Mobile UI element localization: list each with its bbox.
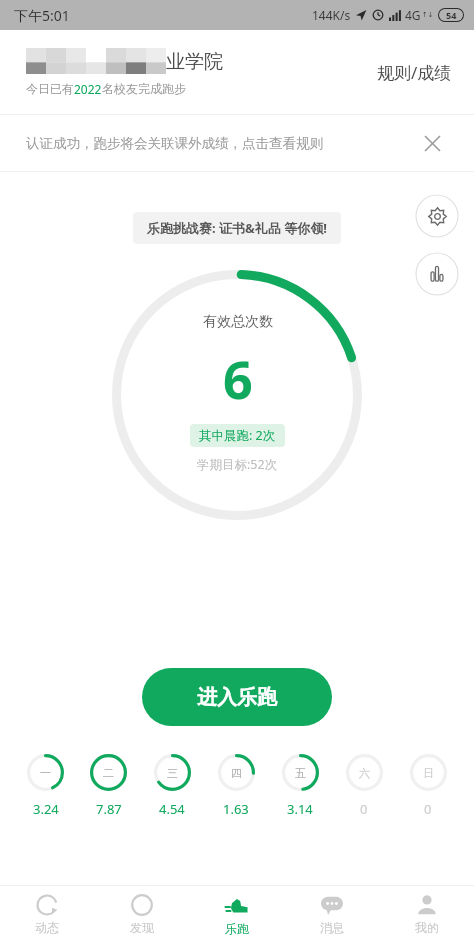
button[interactable]: 进入乐跑 xyxy=(142,668,332,726)
staticText: 其中晨跑: 2次 xyxy=(199,427,276,444)
button[interactable]: 乐跑挑战赛: 证书&礼品 等你领! xyxy=(133,212,341,244)
button[interactable]: 三 xyxy=(140,748,204,824)
staticText: 有效总次数 xyxy=(203,313,273,331)
staticText: 日 xyxy=(423,766,434,780)
staticText: 学期目标:52次 xyxy=(197,456,278,473)
staticText: 4.54 xyxy=(159,800,185,818)
staticText: 0 xyxy=(424,800,432,818)
staticText: 0 xyxy=(360,800,368,818)
staticText: 六 xyxy=(359,766,370,780)
staticText: ↑↓ xyxy=(422,11,434,19)
button[interactable]: 乐跑 xyxy=(189,886,284,948)
staticText: 规则/成绩 xyxy=(377,61,452,84)
staticText: 乐跑 xyxy=(225,921,249,936)
button[interactable]: 我的 xyxy=(379,886,474,948)
staticText: 3.24 xyxy=(33,800,59,818)
button[interactable]: 五 xyxy=(268,748,332,824)
button[interactable]: 设置 xyxy=(415,194,459,238)
button[interactable]: 消息 xyxy=(284,886,379,948)
staticText: 名校友完成跑步 xyxy=(102,81,186,96)
staticText: 7.87 xyxy=(96,800,122,818)
button[interactable]: 统计 xyxy=(415,252,459,296)
button[interactable]: 日 xyxy=(396,748,460,824)
staticText: 认证成功，跑步将会关联课外成绩，点击查看规则 xyxy=(26,135,416,152)
button[interactable]: 二 xyxy=(77,748,140,824)
staticText: 1.63 xyxy=(223,800,249,818)
staticText: 发现 xyxy=(130,920,154,935)
staticText: 业学院 xyxy=(166,50,223,74)
staticText: 乐跑挑战赛: 证书&礼品 等你领! xyxy=(147,219,327,237)
staticText: 三 xyxy=(167,766,178,780)
staticText: 54 xyxy=(446,9,457,21)
staticText: 消息 xyxy=(320,920,344,935)
button[interactable]: 认证成功，跑步将会关联课外成绩，点击查看规则 xyxy=(0,115,474,171)
staticText: 4G xyxy=(405,7,421,23)
staticText: 下午5:01 xyxy=(14,6,70,25)
button[interactable]: 六 xyxy=(332,748,396,824)
button[interactable]: 动态 xyxy=(0,886,94,948)
button[interactable]: 四 xyxy=(204,748,268,824)
staticText: 我的 xyxy=(415,920,439,935)
staticText: 144K/s xyxy=(312,7,351,23)
staticText: 2022 xyxy=(74,81,102,97)
button[interactable]: 发现 xyxy=(94,886,189,948)
button[interactable]: 关闭 xyxy=(416,127,448,159)
staticText: 3.14 xyxy=(287,800,313,818)
staticText: 二 xyxy=(103,766,114,780)
staticText: 进入乐跑 xyxy=(197,685,277,710)
button[interactable]: 规则/成绩 xyxy=(373,55,456,90)
button[interactable]: 一 xyxy=(14,748,77,824)
staticText: 今日已有 xyxy=(26,81,74,96)
staticText: 一 xyxy=(40,766,51,780)
staticText: 动态 xyxy=(35,920,59,935)
staticText: 四 xyxy=(231,766,242,780)
staticText: 6 xyxy=(223,343,253,414)
staticText: 五 xyxy=(295,766,306,780)
